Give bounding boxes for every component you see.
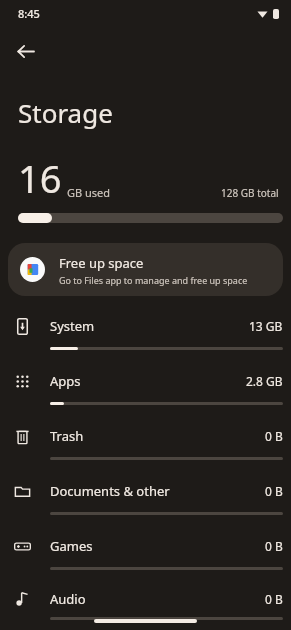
staticText: System <box>50 317 95 335</box>
staticText: Storage <box>18 95 113 130</box>
staticText: Free up space <box>59 254 144 272</box>
staticText: 8:45 <box>18 6 40 21</box>
staticText: 0 B <box>265 591 283 607</box>
staticText: Apps <box>50 372 81 390</box>
staticText: Documents & other <box>50 482 170 500</box>
staticText: 0 B <box>265 483 283 499</box>
staticText: 128 GB total <box>221 186 279 200</box>
button[interactable]: Documents & other <box>0 470 291 525</box>
button[interactable]: Back <box>6 32 44 70</box>
button[interactable]: Trash <box>0 415 291 470</box>
staticText: Go to Files app to manage and free up sp… <box>59 274 248 286</box>
staticText: 0 B <box>265 428 283 444</box>
button[interactable]: Games <box>0 525 291 580</box>
staticText: 13 GB <box>249 318 283 334</box>
staticText: Trash <box>50 427 84 445</box>
button[interactable]: System <box>0 305 291 360</box>
button[interactable]: Apps <box>0 360 291 415</box>
staticText: 2.8 GB <box>246 373 283 389</box>
staticText: Games <box>50 537 93 555</box>
staticText: Audio <box>50 590 86 608</box>
staticText: 0 B <box>265 538 283 554</box>
staticText: 16 <box>18 152 62 204</box>
staticText: GB used <box>67 185 111 200</box>
button[interactable]: Free up space <box>8 243 283 296</box>
button[interactable]: Audio <box>0 580 291 630</box>
